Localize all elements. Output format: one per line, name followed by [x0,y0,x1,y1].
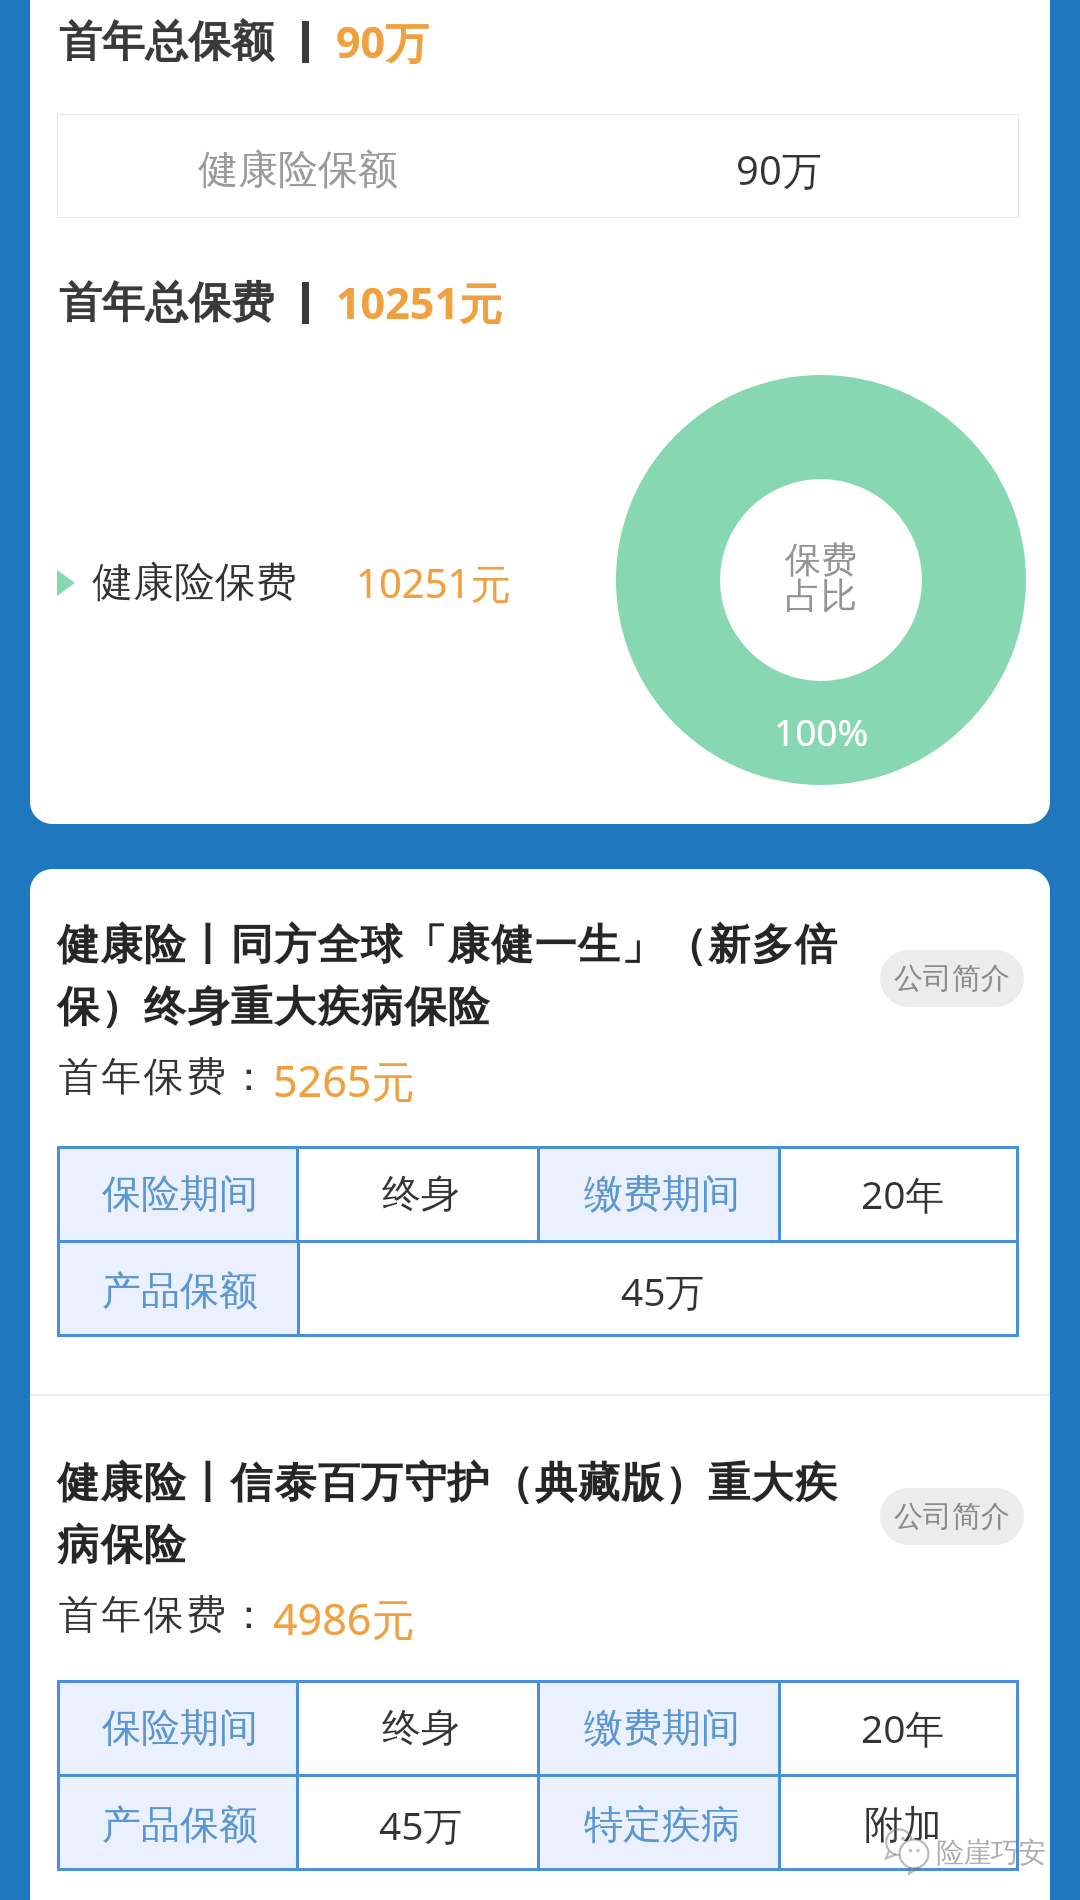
staticText: 首年总保费 [59,276,274,330]
staticText: 20年 [861,1167,945,1220]
staticText: 首年总保额 [59,15,274,69]
staticText: 缴费期间 [584,1169,740,1218]
staticText: 保险期间 [102,1703,258,1752]
other: WeChat [884,1829,934,1869]
staticText: 终身 [382,1703,460,1752]
staticText: 健康险丨同方全球「康健一生」（新多倍保）终身重大疾病保险 [57,919,875,1033]
staticText: 首年保费： [57,1589,270,1639]
staticText: 附加 [864,1800,942,1849]
button[interactable] [30,869,1050,1394]
staticText: 20年 [861,1701,945,1754]
button[interactable]: 健康险保额 [57,114,1019,218]
staticText: 终身 [382,1169,460,1218]
staticText: 健康险保费 [92,557,297,609]
staticText: 公司简介 [894,1498,1010,1535]
button[interactable]: 健康险保费 [57,555,511,610]
button[interactable]: 公司简介 [880,1488,1024,1545]
staticText: 10251元 [336,273,502,332]
other: 保费占比 100% [616,375,1026,785]
staticText: 健康险保额 [198,144,398,194]
staticText: 45万 [379,1798,463,1851]
staticText: 缴费期间 [584,1703,740,1752]
staticText: 保费 [785,537,857,582]
button[interactable]: 公司简介 [880,950,1024,1007]
staticText: 首年保费： [57,1051,270,1101]
staticText: 4986元 [273,1589,415,1648]
staticText: 45万 [621,1264,705,1317]
staticText: 5265元 [273,1051,415,1110]
staticText: 90万 [336,12,429,71]
button[interactable] [30,1396,1050,1900]
staticText: 产品保额 [102,1266,258,1315]
staticText: 产品保额 [102,1800,258,1849]
staticText: 100% [774,706,869,756]
staticText: 特定疾病 [584,1800,740,1849]
staticText: 险崖巧安 [936,1835,1046,1870]
staticText: 占比 [785,573,857,618]
staticText: 10251元 [356,555,511,610]
staticText: 90万 [736,142,822,197]
staticText: 公司简介 [894,960,1010,997]
staticText: 保险期间 [102,1169,258,1218]
staticText: 健康险丨信泰百万守护（典藏版）重大疾病保险 [57,1457,875,1571]
